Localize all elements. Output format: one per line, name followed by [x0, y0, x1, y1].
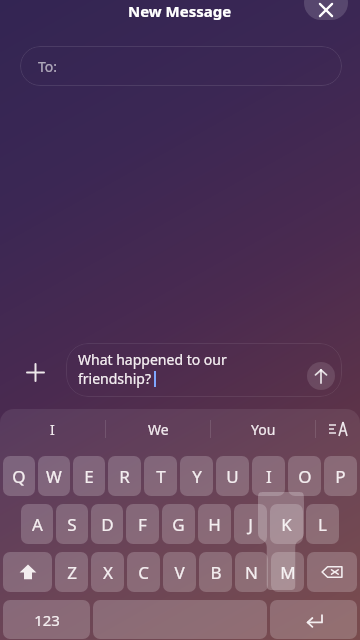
- button[interactable]: E: [73, 456, 105, 496]
- staticText: O: [298, 465, 312, 488]
- button[interactable]: X: [91, 552, 124, 592]
- button[interactable]: I: [0, 409, 105, 449]
- button[interactable]: Enter: [270, 600, 357, 639]
- button[interactable]: N: [235, 552, 268, 592]
- other: Backspace: [320, 560, 344, 584]
- staticText: U: [226, 465, 239, 488]
- button[interactable]: V: [163, 552, 196, 592]
- button[interactable]: I: [252, 456, 285, 496]
- staticText: To:: [38, 57, 58, 76]
- button[interactable]: T: [144, 456, 177, 496]
- staticText: R: [119, 465, 130, 488]
- staticText: Y: [192, 465, 202, 488]
- button[interactable]: [3, 552, 52, 592]
- staticText: E: [84, 465, 94, 488]
- button[interactable]: P: [324, 456, 357, 496]
- button[interactable]: A: [21, 504, 53, 544]
- button[interactable]: F: [126, 504, 159, 544]
- button[interactable]: Text options: [316, 409, 360, 449]
- button[interactable]: R: [108, 456, 141, 496]
- button[interactable]: S: [56, 504, 88, 544]
- button[interactable]: You: [211, 409, 315, 449]
- staticText: We: [148, 420, 169, 439]
- other: Enter: [302, 608, 326, 632]
- button[interactable]: Send: [307, 362, 335, 390]
- staticText: G: [172, 513, 185, 536]
- staticText: P: [335, 465, 346, 488]
- button[interactable]: U: [216, 456, 249, 496]
- staticText: X: [103, 561, 113, 584]
- staticText: I: [50, 420, 55, 439]
- button[interactable]: O: [288, 456, 321, 496]
- button[interactable]: What happened to our: [66, 343, 342, 397]
- button[interactable]: J: [234, 504, 267, 544]
- button[interactable]: M: [271, 552, 304, 592]
- button[interactable]: Close: [304, 0, 348, 20]
- staticText: Z: [67, 561, 77, 584]
- button[interactable]: L: [306, 504, 339, 544]
- staticText: N: [245, 561, 258, 584]
- staticText: F: [138, 513, 147, 536]
- button[interactable]: Y: [180, 456, 213, 496]
- button[interactable]: Q: [3, 456, 35, 496]
- staticText: H: [208, 513, 221, 536]
- staticText: A: [32, 513, 43, 536]
- staticText: S: [67, 513, 77, 536]
- button[interactable]: Z: [55, 552, 88, 592]
- staticText: K: [281, 513, 292, 536]
- staticText: B: [210, 561, 222, 584]
- staticText: 123: [34, 610, 60, 630]
- button[interactable]: C: [127, 552, 160, 592]
- button[interactable]: We: [106, 409, 210, 449]
- staticText: C: [138, 561, 149, 584]
- staticText: M: [280, 561, 296, 584]
- staticText: T: [156, 465, 166, 488]
- button[interactable]: H: [198, 504, 231, 544]
- button[interactable]: W: [38, 456, 70, 496]
- staticText: D: [101, 513, 114, 536]
- button[interactable]: 123: [3, 600, 90, 639]
- staticText: friendship?: [78, 369, 152, 388]
- staticText: Q: [12, 465, 26, 488]
- button[interactable]: G: [162, 504, 195, 544]
- button[interactable]: Add attachment: [18, 355, 52, 389]
- button[interactable]: D: [91, 504, 123, 544]
- staticText: You: [251, 420, 276, 439]
- staticText: New Message: [128, 1, 232, 21]
- staticText: L: [318, 513, 327, 536]
- staticText: What happened to our: [78, 350, 227, 369]
- staticText: I: [266, 465, 272, 488]
- button[interactable]: B: [199, 552, 232, 592]
- button[interactable]: Backspace: [307, 552, 357, 592]
- staticText: V: [174, 561, 185, 584]
- staticText: W: [46, 465, 62, 488]
- staticText: J: [248, 513, 253, 536]
- button[interactable]: K: [270, 504, 303, 544]
- button[interactable]: To:: [20, 46, 342, 86]
